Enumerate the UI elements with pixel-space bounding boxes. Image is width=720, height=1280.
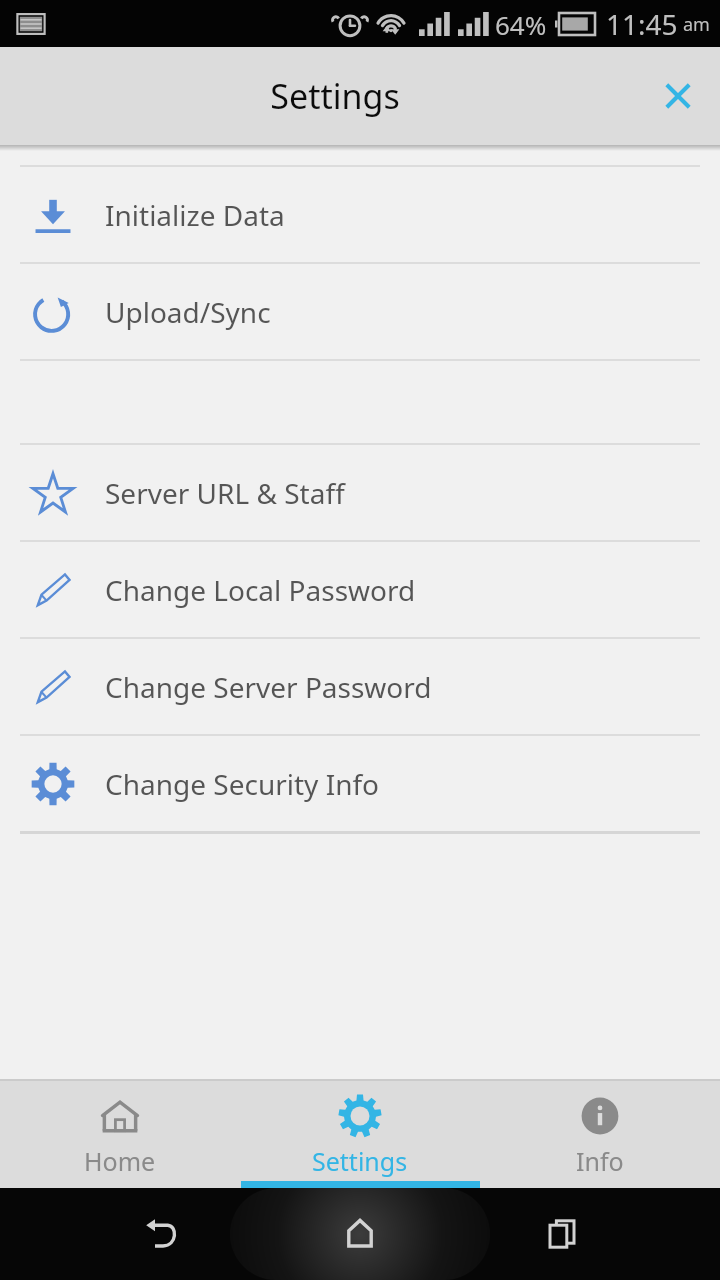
button[interactable]: Server URL & Staff: [0, 445, 720, 540]
staticText: Settings: [270, 73, 400, 119]
button[interactable]: Home: [0, 1081, 240, 1188]
staticText: am: [683, 12, 710, 37]
button[interactable]: Recent apps: [519, 1191, 605, 1277]
staticText: Upload/Sync: [105, 293, 271, 331]
button[interactable]: Info: [480, 1081, 720, 1188]
staticText: Info: [576, 1144, 624, 1178]
button[interactable]: Change Server Password: [0, 639, 720, 734]
button[interactable]: Change Local Password: [0, 542, 720, 637]
button[interactable]: Change Security Info: [0, 736, 720, 831]
staticText: Settings: [312, 1144, 408, 1178]
button[interactable]: Back: [116, 1191, 202, 1277]
staticText: 64%: [495, 7, 547, 42]
button[interactable]: Home: [317, 1191, 403, 1277]
staticText: Server URL & Staff: [105, 474, 345, 512]
button[interactable]: Initialize Data: [0, 167, 720, 262]
staticText: Initialize Data: [105, 196, 285, 234]
staticText: 11:45: [606, 5, 678, 43]
button[interactable]: Settings: [240, 1081, 480, 1188]
staticText: Change Server Password: [105, 668, 432, 706]
staticText: Change Local Password: [105, 571, 416, 609]
button[interactable]: Upload/Sync: [0, 264, 720, 359]
staticText: Home: [84, 1144, 156, 1178]
button[interactable]: Close: [650, 68, 706, 124]
staticText: Change Security Info: [105, 765, 380, 803]
